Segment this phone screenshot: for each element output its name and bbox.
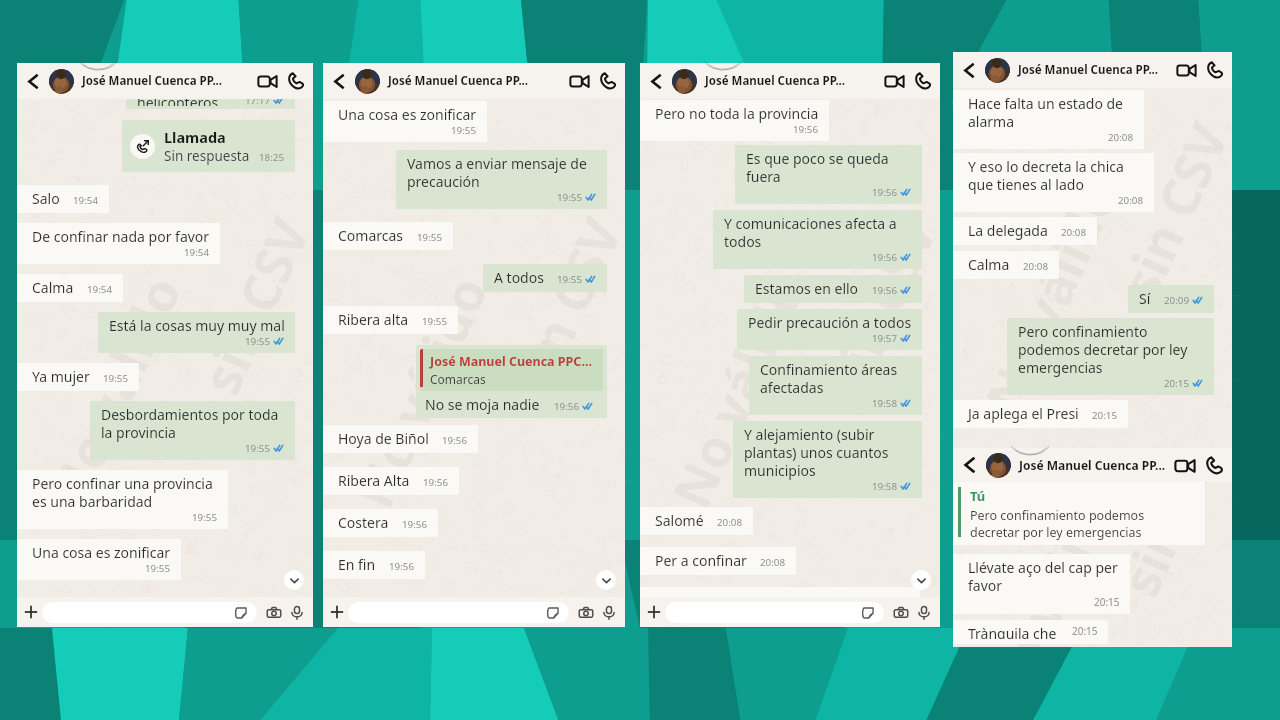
staticText: José Manuel Cuenca PP...: [388, 73, 529, 89]
button[interactable]: Ja aplega el Presi: [968, 404, 1118, 423]
staticText: No se moja nadie: [425, 395, 540, 414]
button[interactable]: Pero confinar una provincia es una barba…: [32, 474, 218, 524]
button[interactable]: Back: [17, 63, 49, 99]
staticText: Pero confinamiento podemos decretar por …: [970, 507, 1146, 540]
button[interactable]: Está la cosas muy muy mal: [109, 316, 285, 348]
staticText: Ribera Alta: [338, 471, 410, 490]
button[interactable]: Hace falta un estado de alarma: [968, 94, 1134, 144]
button[interactable]: La delegada: [968, 221, 1087, 240]
staticText: Pero no toda la provincia: [655, 104, 819, 123]
button[interactable]: Desbordamientos por toda la provincia: [101, 405, 285, 455]
button[interactable]: helicopteros: [137, 99, 285, 106]
staticText: 17:17: [245, 99, 271, 107]
button[interactable]: Llamada: [130, 127, 285, 165]
button[interactable]: Video call: [1171, 452, 1198, 479]
button[interactable]: Camera: [577, 604, 594, 621]
button[interactable]: Video call: [566, 68, 592, 94]
button[interactable]: Estamos en ello: [755, 279, 912, 298]
button[interactable]: Back: [953, 52, 985, 88]
button[interactable]: Una cosa es zonificar: [32, 543, 171, 575]
staticText: 19:55: [103, 372, 129, 385]
staticText: sin CSV: [496, 207, 625, 404]
staticText: Salomé: [655, 511, 704, 530]
staticText: 20:15: [1094, 595, 1120, 609]
staticText: La delegada: [968, 221, 1048, 240]
button[interactable]: Sí: [1139, 289, 1204, 308]
button[interactable]: Per a confinar: [655, 551, 786, 570]
button[interactable]: Ribera alta: [338, 310, 448, 329]
button[interactable]: Back: [953, 448, 986, 482]
button[interactable]: Back: [640, 63, 672, 99]
button[interactable]: Attach: [21, 602, 41, 622]
button[interactable]: Attach: [327, 602, 347, 622]
button[interactable]: Calma: [968, 255, 1049, 274]
button[interactable]: Video call: [881, 68, 907, 94]
staticText: José Manuel Cuenca PP...: [705, 73, 846, 89]
button[interactable]: Ribera Alta: [338, 471, 449, 490]
button[interactable]: Pero confinamiento podemos decretar por …: [1018, 322, 1204, 390]
button[interactable]: Ya mujer: [32, 367, 129, 386]
staticText: No válido: [967, 170, 1132, 423]
staticText: Hace falta un estado de alarma: [968, 94, 1134, 131]
staticText: 19:54: [184, 246, 210, 259]
button[interactable]: A todos: [494, 268, 597, 287]
button[interactable]: Salo: [32, 189, 99, 208]
button[interactable]: Una cosa es zonificar: [338, 105, 477, 137]
button[interactable]: Voice call: [1201, 452, 1228, 479]
button[interactable]: Attach: [644, 602, 664, 622]
button[interactable]: En fin: [338, 555, 415, 574]
button[interactable]: Voice call: [910, 68, 936, 94]
staticText: Y alejamiento (subir plantas) unos cuant…: [744, 425, 912, 480]
button[interactable]: Y comunicaciones afecta a todos: [724, 214, 912, 264]
button[interactable]: Camera: [265, 604, 282, 621]
button[interactable]: Voice call: [1202, 57, 1228, 83]
button[interactable]: Comarcas: [338, 226, 443, 245]
button[interactable]: Salomé: [655, 511, 743, 530]
staticText: Tú: [970, 487, 986, 505]
staticText: 19:58: [872, 480, 898, 493]
staticText: Pero confinamiento podemos decretar por …: [1018, 322, 1204, 377]
button[interactable]: Back: [323, 63, 355, 99]
button[interactable]: Calma: [32, 278, 113, 297]
button[interactable]: Confinamiento áreas afectadas: [760, 360, 912, 410]
button[interactable]: Voice message: [288, 604, 305, 621]
staticText: 20:08: [1118, 194, 1144, 207]
staticText: 19:55: [245, 442, 271, 455]
button[interactable]: [665, 602, 884, 623]
button[interactable]: Y alejamiento (subir plantas) unos cuant…: [744, 425, 912, 493]
button[interactable]: José Manuel Cuenca PPC...: [420, 349, 603, 414]
button[interactable]: Voice call: [595, 68, 621, 94]
button[interactable]: [42, 602, 257, 623]
button[interactable]: Costera: [338, 513, 428, 532]
button[interactable]: Hoya de Biñol: [338, 429, 468, 448]
staticText: 19:55: [557, 191, 583, 204]
button[interactable]: Trànquila che: [968, 624, 1098, 639]
staticText: helicopteros: [137, 99, 219, 106]
staticText: Pero confinar una provincia es una barba…: [32, 474, 218, 511]
button[interactable]: Voice message: [600, 604, 617, 621]
button[interactable]: Video call: [254, 68, 280, 94]
button[interactable]: Scroll to bottom: [284, 570, 304, 590]
button[interactable]: Voice call: [283, 68, 309, 94]
staticText: Ribera alta: [338, 310, 409, 329]
button[interactable]: Camera: [892, 604, 909, 621]
staticText: No válido: [967, 467, 1132, 647]
button[interactable]: Es que poco se queda fuera: [746, 149, 912, 199]
staticText: Está la cosas muy muy mal: [109, 316, 285, 335]
button[interactable]: Scroll to bottom: [911, 570, 931, 590]
button[interactable]: Pero no toda la provincia: [655, 104, 819, 136]
button[interactable]: Y eso lo decreta la chica que tienes al …: [968, 157, 1144, 207]
staticText: 19:55: [557, 273, 583, 286]
staticText: Y eso lo decreta la chica que tienes al …: [968, 157, 1144, 194]
button[interactable]: Pedir precaución a todos: [748, 313, 912, 345]
button[interactable]: Voice message: [915, 604, 932, 621]
staticText: No válido: [337, 265, 502, 518]
button[interactable]: Scroll to bottom: [596, 570, 616, 590]
button[interactable]: Llévate aço del cap per favor: [968, 558, 1120, 609]
button[interactable]: [348, 602, 569, 623]
staticText: Es que poco se queda fuera: [746, 149, 912, 186]
button[interactable]: Video call: [1173, 57, 1199, 83]
button[interactable]: Vamos a enviar mensaje de precaución: [407, 154, 597, 204]
button[interactable]: De confinar nada por favor: [32, 227, 210, 259]
